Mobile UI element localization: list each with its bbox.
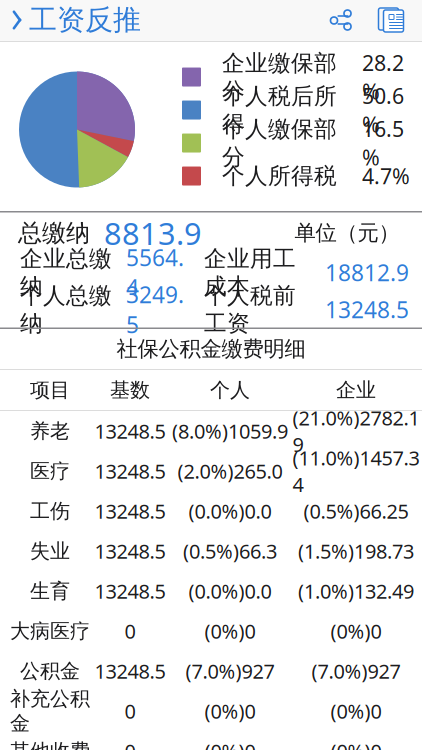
staticText: 13248.5 [94,418,165,444]
staticText: 0 [124,618,135,644]
button[interactable]: Share [328,7,354,33]
staticText: (0%)0 [330,618,381,644]
staticText: 企业缴保部分 [222,49,337,105]
staticText: 生育 [30,579,70,603]
staticText: (8.0%)1059.9 [172,418,288,444]
staticText: (0%)0 [204,738,255,750]
staticText: 18812.9 [325,257,409,287]
staticText: 项目 [30,378,70,402]
staticText: 医疗 [30,459,70,483]
staticText: (11.0%)1457.34 [292,444,419,497]
staticText: 总缴纳 [18,218,90,248]
staticText: 13248.5 [94,578,165,604]
staticText: 8813.9 [104,213,202,253]
staticText: 补充公积金 [10,686,90,735]
staticText: 单位（元） [294,220,399,246]
staticText: 养老 [30,419,70,443]
staticText: (7.0%)927 [311,658,400,684]
staticText: 企业 [336,378,376,402]
staticText: (0%)0 [330,738,381,750]
staticText: (0.5%)66.3 [183,538,277,564]
staticText: 企业用工成本 [204,245,296,300]
staticText: (21.0%)2782.19 [292,404,419,457]
staticText: 工伤 [30,499,70,523]
staticText: 50.6% [362,82,404,138]
staticText: 5564.4 [126,242,184,303]
staticText: 28.2% [362,49,404,105]
staticText: 基数 [110,378,150,402]
staticText: (2.0%)265.0 [177,458,282,484]
staticText: 13248.5 [94,538,165,564]
staticText: 3249.5 [126,279,184,340]
staticText: 公积金 [20,659,80,683]
staticText: 个人税前工资 [204,282,296,337]
staticText: 其他收费 [10,739,90,750]
staticText: (0%)0 [204,618,255,644]
staticText: 个人税后所得 [222,82,337,138]
staticText: 16.5% [362,115,404,171]
staticText: 工资反推 [29,3,141,37]
staticText: (0.0%)0.0 [188,498,271,524]
staticText: (1.5%)198.73 [298,538,414,564]
staticText: (0%)0 [204,698,255,724]
staticText: 失业 [30,539,70,563]
staticText: 社保公积金缴费明细 [116,336,305,362]
button[interactable]: Report [354,6,406,34]
staticText: 0 [124,698,135,724]
staticText: (1.0%)132.49 [298,578,414,604]
staticText: (7.0%)927 [185,658,274,684]
staticText: 大病医疗 [10,619,90,643]
staticText: 个人缴保部分 [222,115,337,171]
button[interactable]: 工资反推 [0,0,141,43]
staticText: 个人总缴纳 [20,282,112,337]
staticText: (0.5%)66.25 [303,498,408,524]
staticText: 13248.5 [94,658,165,684]
staticText: 4.7% [362,162,410,190]
staticText: (0.0%)0.0 [188,578,271,604]
staticText: 13248.5 [94,458,165,484]
staticText: 个人 [210,378,250,402]
staticText: 13248.5 [325,294,409,324]
staticText: 企业总缴纳 [20,245,112,300]
staticText: 13248.5 [94,498,165,524]
staticText: (0%)0 [330,698,381,724]
staticText: 个人所得税 [222,162,337,190]
staticText: 0 [124,738,135,750]
